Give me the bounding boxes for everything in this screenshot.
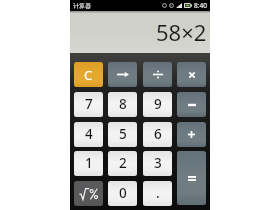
staticText: 5 (119, 125, 127, 143)
button[interactable]: 8 (108, 92, 137, 117)
staticText: 4 (85, 125, 93, 143)
button[interactable]: Multiply (177, 62, 206, 87)
button[interactable]: 0 (108, 181, 137, 206)
staticText: 计算器 (73, 2, 91, 10)
staticText: 2 (119, 154, 127, 172)
staticText: 9 (154, 95, 162, 113)
button[interactable]: Minus (177, 92, 206, 117)
button[interactable]: . (143, 181, 172, 206)
staticText: 7 (85, 95, 93, 113)
button[interactable]: Divide (143, 62, 172, 87)
button[interactable]: 4 (74, 122, 103, 147)
button[interactable]: 5 (108, 122, 137, 147)
button[interactable]: Clear (74, 62, 103, 87)
staticText: 1 (85, 154, 93, 172)
button[interactable]: Backspace (108, 62, 137, 87)
staticText: 8:40 (194, 1, 207, 10)
staticText: . (156, 184, 160, 202)
staticText: 0 (119, 184, 127, 202)
staticText: 58×2 (156, 17, 207, 47)
staticText: 3 (154, 154, 162, 172)
button[interactable]: Square root and percent (74, 181, 103, 206)
button[interactable]: 1 (74, 151, 103, 176)
button[interactable]: 7 (74, 92, 103, 117)
button[interactable]: 6 (143, 122, 172, 147)
staticText: C (84, 66, 93, 84)
button[interactable]: 3 (143, 151, 172, 176)
staticText: 8 (119, 95, 127, 113)
button[interactable]: Equals (177, 151, 206, 205)
button[interactable]: 9 (143, 92, 172, 117)
button[interactable]: Plus (177, 122, 206, 147)
staticText: 6 (154, 125, 162, 143)
button[interactable]: 2 (108, 151, 137, 176)
